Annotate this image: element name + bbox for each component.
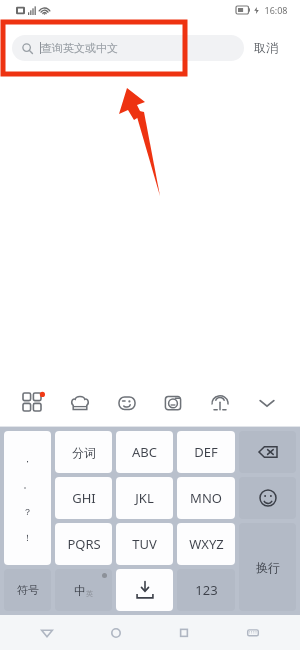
staticText: ！ <box>23 532 32 543</box>
button[interactable]: DEF <box>177 431 235 473</box>
button[interactable]: Emoji <box>239 477 296 519</box>
button[interactable]: Voice assistant <box>200 383 240 423</box>
staticText: JKL <box>135 489 154 507</box>
button[interactable]: Collapse keyboard <box>247 383 287 423</box>
staticText: 英 <box>86 589 93 598</box>
button[interactable]: Switch language <box>55 569 112 611</box>
staticText: 换行 <box>256 560 280 575</box>
staticText: ， <box>23 453 32 464</box>
button[interactable]: Keyboard <box>231 615 275 650</box>
button[interactable]: 取消 <box>244 34 288 61</box>
staticText: 16:08 <box>264 4 288 16</box>
button[interactable]: Emoji <box>107 383 147 423</box>
button[interactable]: Themes <box>60 383 100 423</box>
button[interactable]: 123 <box>177 569 235 611</box>
staticText: MNO <box>190 489 222 507</box>
button[interactable]: Space <box>116 569 173 611</box>
button[interactable]: TUV <box>116 523 173 565</box>
staticText: ABC <box>132 443 157 461</box>
button[interactable]: MNO <box>177 477 235 519</box>
staticText: 符号 <box>17 583 39 597</box>
staticText: WXYZ <box>189 535 224 553</box>
staticText: ？ <box>23 506 32 517</box>
staticText: TUV <box>132 535 157 553</box>
staticText: PQRS <box>67 535 101 553</box>
button[interactable]: JKL <box>116 477 173 519</box>
staticText: DEF <box>194 443 218 461</box>
button[interactable]: Punctuation <box>4 431 51 565</box>
staticText: 分词 <box>72 445 96 460</box>
button[interactable]: Camera sticker <box>153 383 193 423</box>
button[interactable]: Symbols <box>4 569 51 611</box>
button[interactable]: Apps <box>13 383 53 423</box>
button[interactable]: Enter <box>239 523 296 611</box>
button[interactable]: Home <box>94 615 138 650</box>
button[interactable]: ABC <box>116 431 173 473</box>
staticText: 。 <box>23 479 32 490</box>
staticText: GHI <box>72 489 96 507</box>
button[interactable]: Backspace <box>239 431 296 473</box>
staticText: 取消 <box>254 40 278 55</box>
staticText: 123 <box>195 581 218 599</box>
button[interactable]: 分词 <box>55 431 112 473</box>
button[interactable]: 查询英文或中文 <box>12 35 244 61</box>
staticText: 中 <box>74 583 86 598</box>
button[interactable]: WXYZ <box>177 523 235 565</box>
button[interactable]: Recents <box>162 615 206 650</box>
staticText: 查询英文或中文 <box>41 41 118 55</box>
button[interactable]: Back <box>25 615 69 650</box>
button[interactable]: PQRS <box>55 523 112 565</box>
button[interactable]: GHI <box>55 477 112 519</box>
